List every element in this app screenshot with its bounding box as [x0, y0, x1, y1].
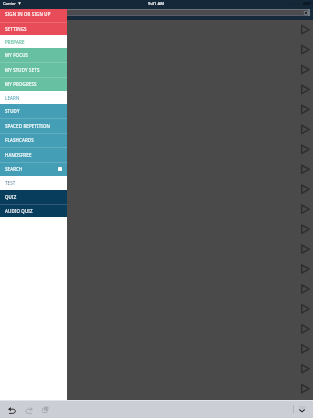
- staticText: TEST: [5, 180, 16, 186]
- staticText: SETTINGS: [5, 26, 27, 32]
- button[interactable]: MY PROGRESS: [0, 77, 67, 91]
- staticText: HANDSFREE: [5, 152, 32, 158]
- button[interactable]: Clear text: [67, 9, 313, 16]
- button[interactable]: Clear text: [304, 11, 308, 15]
- staticText: AUDIO QUIZ: [5, 208, 33, 214]
- button[interactable]: Hide keyboard: [297, 404, 307, 414]
- button[interactable]: SETTINGS: [0, 22, 67, 35]
- button[interactable]: FLASHCARDS: [0, 133, 67, 147]
- button[interactable]: LEARN: [0, 91, 67, 104]
- staticText: LEARN: [5, 95, 20, 101]
- button[interactable]: MY FOCUS: [0, 48, 67, 62]
- staticText: QUIZ: [5, 194, 17, 200]
- button[interactable]: HANDSFREE: [0, 147, 67, 162]
- staticText: PREPARE: [5, 39, 25, 45]
- button[interactable]: Redo: [24, 405, 33, 414]
- staticText: SEARCH: [5, 166, 23, 172]
- staticText: MY STUDY SETS: [5, 67, 40, 73]
- button[interactable]: AUDIO QUIZ: [0, 204, 67, 217]
- staticText: FLASHCARDS: [5, 137, 34, 143]
- staticText: 9:41 AM: [148, 1, 165, 7]
- button[interactable]: TEST: [0, 176, 67, 190]
- staticText: SPACED REPETITION: [5, 123, 51, 129]
- staticText: Carrier: [3, 1, 17, 6]
- button[interactable]: Undo: [7, 405, 16, 414]
- staticText: MY FOCUS: [5, 52, 29, 58]
- button[interactable]: QUIZ: [0, 190, 67, 204]
- staticText: SIGN IN OR SIGN UP: [5, 11, 51, 17]
- staticText: STUDY: [5, 108, 20, 114]
- button[interactable]: SEARCH: [0, 162, 67, 176]
- button[interactable]: STUDY: [0, 104, 67, 118]
- button[interactable]: SIGN IN OR SIGN UP: [0, 9, 67, 22]
- button[interactable]: PREPARE: [0, 35, 67, 48]
- staticText: MY PROGRESS: [5, 81, 37, 87]
- button[interactable]: SPACED REPETITION: [0, 118, 67, 133]
- button[interactable]: Paste: [41, 405, 50, 414]
- button[interactable]: MY STUDY SETS: [0, 62, 67, 77]
